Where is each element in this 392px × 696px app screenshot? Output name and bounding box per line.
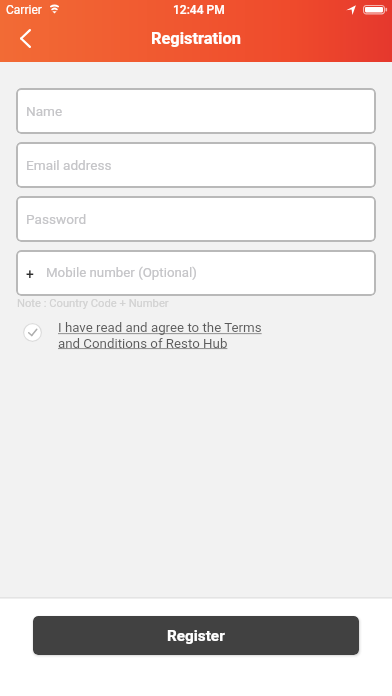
button[interactable]: Back (3, 16, 47, 60)
button[interactable]: I have read and agree to the Terms and C… (0, 320, 392, 351)
staticText: Note : Country Code + Number (17, 297, 169, 310)
staticText: 12:44 PM (173, 3, 225, 17)
button[interactable]: Password (16, 196, 376, 242)
staticText: Registration (151, 29, 241, 48)
button[interactable]: Email address (16, 142, 376, 188)
staticText: Register (167, 627, 225, 645)
staticText: Password (26, 211, 87, 227)
button[interactable]: Name (16, 88, 376, 134)
staticText: + (26, 266, 34, 282)
button[interactable]: + (16, 250, 376, 296)
staticText: Carrier (6, 3, 42, 17)
staticText: Mobile number (Optional) (46, 265, 197, 281)
staticText: Name (26, 103, 63, 119)
staticText: Email address (26, 157, 112, 173)
staticText: I have read and agree to the Terms and C… (58, 320, 262, 351)
button[interactable]: Register (33, 616, 359, 655)
